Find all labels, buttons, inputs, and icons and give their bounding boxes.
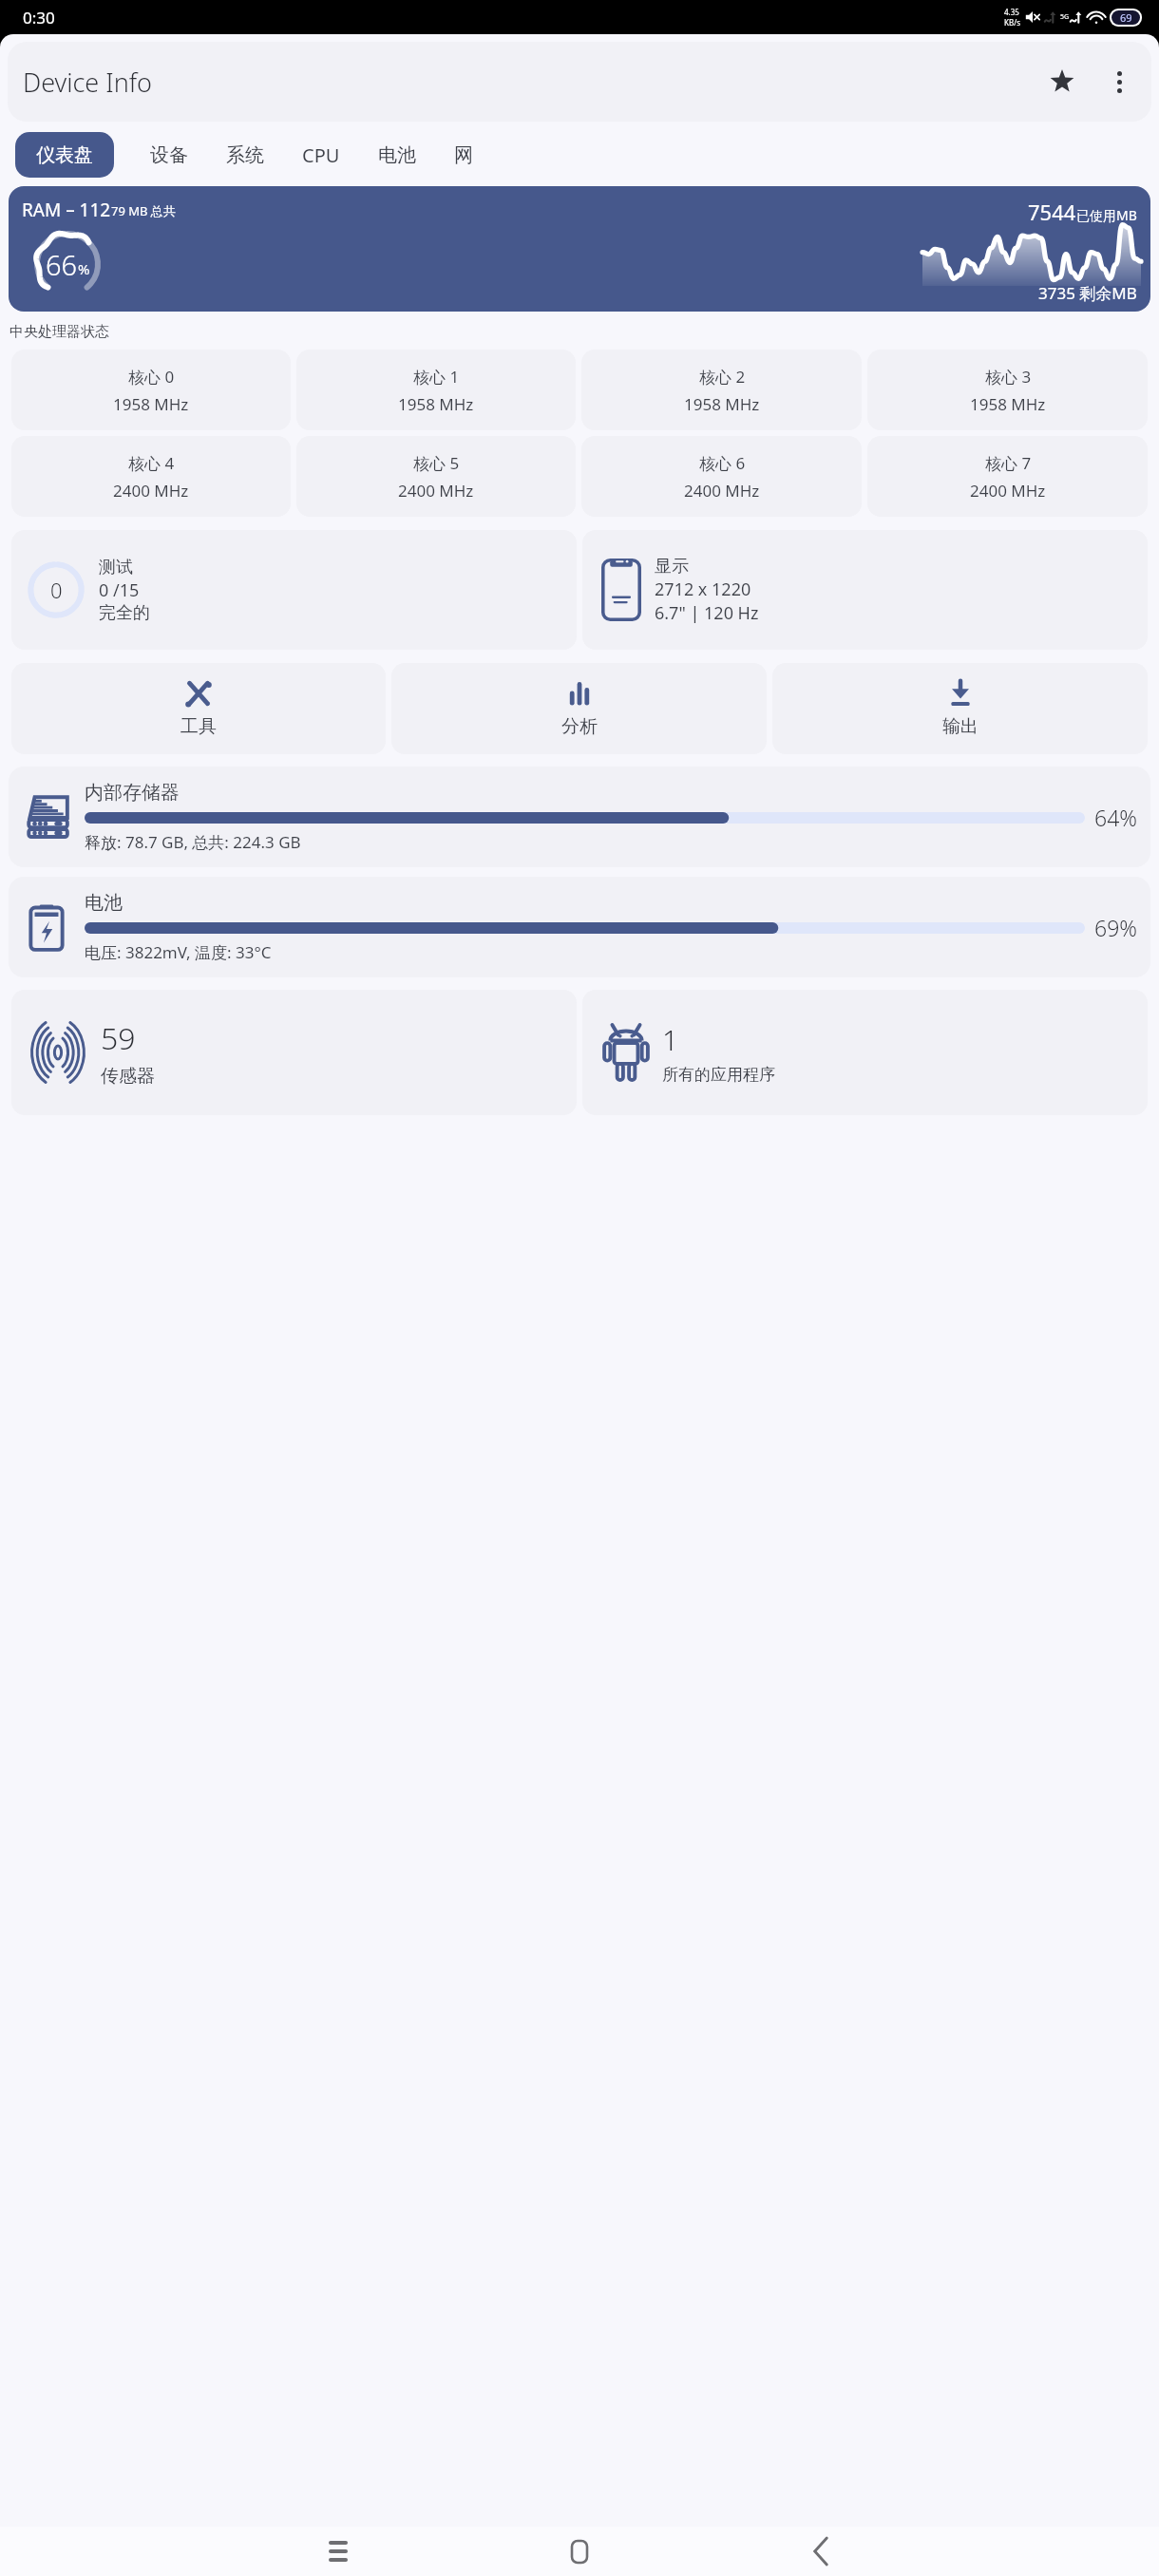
staticText: 内部存储器 xyxy=(85,781,180,805)
staticText: 核心 7 xyxy=(985,452,1032,474)
staticText: 69 xyxy=(1120,10,1132,25)
button[interactable]: 输出 xyxy=(772,663,1148,754)
button[interactable]: Device Info xyxy=(8,42,1151,122)
staticText: RAM – 112 xyxy=(22,198,111,222)
button[interactable]: 显示 xyxy=(582,530,1148,650)
button[interactable]: CPU xyxy=(285,132,357,178)
staticText: 释放: 78.7 GB, 总共: 224.3 GB xyxy=(85,831,301,853)
staticText: 1958 MHz xyxy=(970,393,1046,415)
staticText: CPU xyxy=(302,142,340,168)
staticText: 测试 xyxy=(99,557,133,578)
staticText: 核心 3 xyxy=(985,366,1032,388)
staticText: 5G xyxy=(1060,12,1070,22)
button[interactable]: More options xyxy=(1096,59,1142,104)
button[interactable]: Favorite xyxy=(1039,59,1085,104)
staticText: 0 xyxy=(50,576,63,604)
staticText: 显示 xyxy=(655,556,689,578)
staticText: 2400 MHz xyxy=(113,480,189,502)
button[interactable]: Home xyxy=(459,2527,700,2576)
button[interactable]: 核心 5 xyxy=(296,436,576,517)
button[interactable]: 59 xyxy=(11,990,577,1115)
button[interactable]: RAM – 112 xyxy=(9,186,1150,312)
button[interactable]: 工具 xyxy=(11,663,386,754)
staticText: 核心 5 xyxy=(413,452,460,474)
button[interactable]: 1 xyxy=(582,990,1148,1115)
staticText: 66 xyxy=(46,246,78,283)
staticText: 3735 剩余MB xyxy=(1038,282,1137,304)
staticText: 2400 MHz xyxy=(970,480,1046,502)
button[interactable]: 网 xyxy=(437,132,490,178)
staticText: 2712 x 1220 xyxy=(655,578,751,601)
button[interactable]: 核心 2 xyxy=(581,350,862,430)
staticText: 核心 2 xyxy=(699,366,746,388)
button[interactable]: 核心 1 xyxy=(296,350,576,430)
staticText: 分析 xyxy=(561,715,598,738)
staticText: 64% xyxy=(1094,803,1137,832)
staticText: 2400 MHz xyxy=(398,480,474,502)
button[interactable]: 电池 xyxy=(9,877,1150,977)
staticText: 核心 6 xyxy=(699,452,746,474)
button[interactable]: 0 xyxy=(11,530,577,650)
staticText: 电池 xyxy=(378,143,416,167)
button[interactable]: 分析 xyxy=(391,663,767,754)
staticText: Device Info xyxy=(23,65,152,100)
staticText: 仪表盘 xyxy=(36,143,93,167)
staticText: 所有的应用程序 xyxy=(662,1065,775,1085)
staticText: 核心 0 xyxy=(128,366,175,388)
staticText: 0 /15 xyxy=(99,578,140,602)
button[interactable]: Recent apps xyxy=(218,2527,459,2576)
staticText: 59 xyxy=(101,1017,136,1059)
staticText: 电压: 3822mV, 温度: 33°C xyxy=(85,941,272,963)
button[interactable]: 电池 xyxy=(361,132,433,178)
staticText: 69% xyxy=(1094,913,1137,942)
button[interactable]: 核心 3 xyxy=(867,350,1148,430)
staticText: 核心 4 xyxy=(128,452,175,474)
staticText: 79 MB 总共 xyxy=(111,202,176,219)
staticText: 电池 xyxy=(85,891,123,915)
staticText: 传感器 xyxy=(101,1065,155,1088)
staticText: KB/s xyxy=(1004,17,1020,28)
button[interactable]: 核心 4 xyxy=(11,436,291,517)
staticText: 网 xyxy=(454,143,473,167)
staticText: 1 xyxy=(662,1020,679,1059)
button[interactable]: 仪表盘 xyxy=(15,132,114,178)
staticText: 中央处理器状态 xyxy=(9,323,109,341)
staticText: 输出 xyxy=(942,715,978,738)
staticText: 完全的 xyxy=(99,602,150,624)
button[interactable]: 核心 6 xyxy=(581,436,862,517)
staticText: 6.7" | 120 Hz xyxy=(655,601,759,625)
staticText: 设备 xyxy=(150,143,188,167)
button[interactable]: 内部存储器 xyxy=(9,767,1150,867)
staticText: 1958 MHz xyxy=(398,393,474,415)
staticText: 已使用MB xyxy=(1076,206,1137,224)
staticText: 4.35 xyxy=(1004,7,1019,17)
staticText: % xyxy=(78,259,90,278)
staticText: 工具 xyxy=(180,715,217,738)
button[interactable]: Back xyxy=(700,2527,941,2576)
staticText: 7544 xyxy=(1028,198,1076,226)
staticText: 1958 MHz xyxy=(113,393,189,415)
staticText: 0:30 xyxy=(23,7,55,28)
staticText: 2400 MHz xyxy=(684,480,760,502)
staticText: 核心 1 xyxy=(413,366,460,388)
button[interactable]: 核心 7 xyxy=(867,436,1148,517)
button[interactable]: 设备 xyxy=(133,132,205,178)
staticText: 系统 xyxy=(226,143,264,167)
button[interactable]: 核心 0 xyxy=(11,350,291,430)
staticText: 1958 MHz xyxy=(684,393,760,415)
button[interactable]: 系统 xyxy=(209,132,281,178)
